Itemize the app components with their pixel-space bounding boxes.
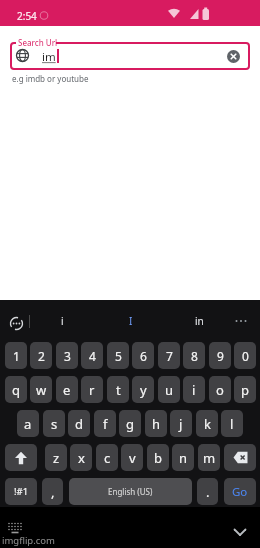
- button[interactable]: 5: [107, 342, 129, 369]
- button[interactable]: 8: [183, 342, 205, 369]
- staticText: v: [129, 449, 136, 467]
- button[interactable]: f: [94, 410, 116, 437]
- button[interactable]: v: [121, 444, 143, 471]
- staticText: 2:54: [17, 9, 37, 23]
- staticText: b: [154, 449, 162, 467]
- staticText: imgflip.com: [2, 534, 55, 547]
- staticText: 7: [166, 348, 173, 364]
- staticText: l: [230, 415, 234, 433]
- button[interactable]: a: [17, 410, 39, 437]
- staticText: w: [36, 381, 47, 399]
- button[interactable]: [10, 42, 250, 70]
- staticText: e: [63, 381, 71, 399]
- staticText: h: [152, 415, 161, 433]
- staticText: m: [203, 449, 216, 467]
- button[interactable]: h: [145, 410, 167, 437]
- staticText: x: [78, 449, 85, 467]
- button[interactable]: [224, 444, 256, 471]
- staticText: a: [24, 415, 32, 433]
- staticText: d: [75, 415, 83, 433]
- staticText: i: [192, 381, 196, 399]
- staticText: 8: [191, 348, 198, 364]
- button[interactable]: English (US): [69, 478, 192, 505]
- button[interactable]: c: [96, 444, 118, 471]
- button[interactable]: [9, 316, 24, 331]
- button[interactable]: 4: [81, 342, 103, 369]
- button[interactable]: 1: [5, 342, 27, 369]
- staticText: k: [204, 415, 211, 433]
- button[interactable]: [233, 317, 249, 325]
- button[interactable]: p: [234, 376, 256, 403]
- button[interactable]: ,: [42, 478, 63, 505]
- staticText: 0: [242, 348, 249, 364]
- button[interactable]: m: [198, 444, 220, 471]
- button[interactable]: t: [107, 376, 129, 403]
- button[interactable]: e: [56, 376, 78, 403]
- button[interactable]: [227, 50, 240, 63]
- button[interactable]: 7: [158, 342, 180, 369]
- button[interactable]: l: [221, 410, 243, 437]
- button[interactable]: I: [113, 311, 149, 331]
- button[interactable]: r: [81, 376, 103, 403]
- button[interactable]: 9: [209, 342, 231, 369]
- button[interactable]: u: [158, 376, 180, 403]
- staticText: Search Url: [18, 37, 58, 48]
- button[interactable]: [232, 526, 248, 538]
- staticText: !#1: [14, 485, 29, 498]
- staticText: e.g imdb or youtube: [12, 73, 89, 84]
- staticText: r: [89, 381, 95, 399]
- button[interactable]: .: [197, 478, 218, 505]
- staticText: ,: [51, 483, 55, 501]
- button[interactable]: j: [170, 410, 192, 437]
- button[interactable]: 3: [56, 342, 78, 369]
- staticText: English (US): [108, 486, 153, 497]
- staticText: 2: [38, 348, 45, 364]
- staticText: I: [129, 314, 133, 328]
- staticText: im: [42, 49, 56, 65]
- staticText: 6: [140, 348, 147, 364]
- staticText: q: [12, 381, 20, 399]
- staticText: p: [241, 381, 249, 399]
- button[interactable]: 6: [132, 342, 154, 369]
- staticText: .: [206, 483, 210, 501]
- button[interactable]: in: [181, 311, 217, 331]
- button[interactable]: 0: [234, 342, 256, 369]
- button[interactable]: [5, 444, 37, 471]
- staticText: 1: [13, 348, 20, 364]
- button[interactable]: g: [119, 410, 141, 437]
- staticText: in: [195, 314, 204, 328]
- button[interactable]: x: [70, 444, 92, 471]
- staticText: s: [51, 415, 58, 433]
- button[interactable]: !#1: [5, 478, 37, 505]
- staticText: g: [126, 415, 134, 433]
- staticText: 3: [64, 348, 71, 364]
- button[interactable]: 2: [30, 342, 52, 369]
- staticText: 4: [89, 348, 96, 364]
- button[interactable]: n: [172, 444, 194, 471]
- staticText: c: [104, 449, 111, 467]
- button[interactable]: z: [45, 444, 67, 471]
- staticText: y: [140, 381, 147, 399]
- staticText: t: [116, 381, 121, 399]
- staticText: o: [216, 381, 224, 399]
- staticText: z: [53, 449, 60, 467]
- button[interactable]: i: [44, 311, 80, 331]
- staticText: i: [61, 314, 64, 328]
- button[interactable]: d: [68, 410, 90, 437]
- button[interactable]: w: [30, 376, 52, 403]
- staticText: j: [179, 415, 183, 433]
- button[interactable]: i: [183, 376, 205, 403]
- staticText: u: [165, 381, 174, 399]
- button[interactable]: Go: [224, 478, 256, 505]
- button[interactable]: s: [43, 410, 65, 437]
- button[interactable]: q: [5, 376, 27, 403]
- staticText: n: [179, 449, 188, 467]
- button[interactable]: [7, 521, 23, 535]
- staticText: Go: [232, 484, 248, 500]
- button[interactable]: y: [132, 376, 154, 403]
- button[interactable]: k: [196, 410, 218, 437]
- button[interactable]: o: [209, 376, 231, 403]
- staticText: 9: [217, 348, 224, 364]
- button[interactable]: b: [147, 444, 169, 471]
- staticText: f: [103, 415, 108, 433]
